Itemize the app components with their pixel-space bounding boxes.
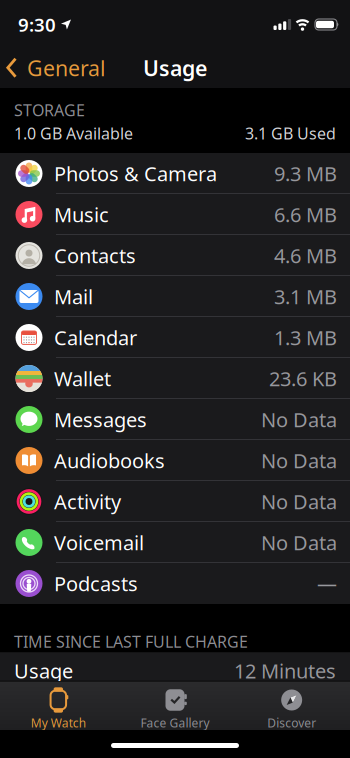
- staticText: Face Gallery: [140, 715, 209, 731]
- staticText: No Data: [261, 488, 337, 515]
- staticText: No Data: [261, 406, 337, 433]
- staticText: 3.1 MB: [274, 283, 337, 310]
- staticText: 9:30: [18, 12, 56, 37]
- staticText: Mail: [54, 283, 93, 310]
- staticText: Discover: [267, 715, 316, 731]
- staticText: Voicemail: [54, 529, 144, 556]
- staticText: 4.6 MB: [274, 242, 337, 269]
- staticText: My Watch: [31, 715, 86, 731]
- staticText: 23.6 KB: [269, 365, 337, 392]
- staticText: TIME SINCE LAST FULL CHARGE: [14, 631, 248, 652]
- staticText: Podcasts: [54, 570, 138, 597]
- staticText: Wallet: [54, 365, 111, 392]
- staticText: 9.3 MB: [274, 160, 337, 187]
- staticText: Usage: [14, 657, 73, 684]
- staticText: 12 Minutes: [234, 657, 336, 684]
- staticText: Usage: [143, 54, 207, 82]
- staticText: 3.1 GB Used: [245, 123, 336, 144]
- staticText: 6.6 MB: [274, 201, 337, 228]
- staticText: No Data: [261, 529, 337, 556]
- staticText: Messages: [54, 406, 147, 433]
- staticText: 1.0 GB Available: [14, 123, 133, 144]
- staticText: General: [27, 54, 106, 82]
- staticText: Activity: [54, 488, 121, 515]
- staticText: —: [317, 570, 337, 597]
- staticText: 1.3 MB: [274, 324, 337, 351]
- staticText: Contacts: [54, 242, 136, 269]
- staticText: Photos & Camera: [54, 160, 217, 187]
- button[interactable]: Back: [0, 54, 114, 82]
- staticText: Music: [54, 201, 109, 228]
- staticText: STORAGE: [14, 99, 85, 121]
- button[interactable]: Face Gallery: [117, 681, 233, 730]
- button[interactable]: Discover: [233, 681, 350, 730]
- staticText: Audiobooks: [54, 447, 165, 474]
- button[interactable]: My Watch: [0, 681, 117, 730]
- staticText: No Data: [261, 447, 337, 474]
- staticText: Calendar: [54, 324, 137, 351]
